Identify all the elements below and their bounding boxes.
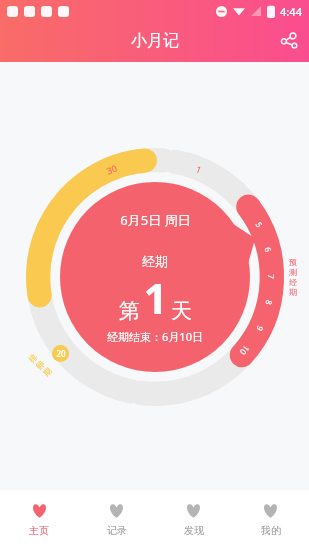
button[interactable]: 主页 (0, 490, 78, 549)
staticText: 卵 (34, 359, 46, 371)
staticText: 9 (254, 324, 267, 333)
staticText: 小月记 (131, 31, 179, 51)
staticText: 排 (26, 352, 39, 364)
staticText: 期 (41, 365, 54, 378)
staticText: 发现 (184, 524, 204, 537)
staticText: 天 (171, 298, 192, 324)
staticText: 8 (264, 299, 275, 306)
button[interactable]: 记录 (78, 490, 155, 549)
staticText: 记录 (107, 524, 127, 537)
staticText: 1 (194, 162, 204, 176)
staticText: 经期结束：6月10日 (107, 329, 203, 344)
button[interactable]: 我的 (232, 490, 309, 549)
staticText: 6 (263, 246, 274, 253)
staticText: 1 (143, 269, 168, 326)
staticText: 4:44 (280, 4, 302, 19)
staticText: 经 (289, 277, 297, 287)
staticText: 主页 (29, 524, 49, 537)
staticText: 6月5日 周日 (120, 211, 191, 229)
staticText: 30 (104, 161, 119, 177)
staticText: 测 (289, 267, 297, 277)
staticText: 期 (289, 287, 297, 297)
staticText: 第 (119, 298, 140, 324)
staticText: 预 (289, 257, 297, 267)
button[interactable]: Share (269, 21, 309, 61)
staticText: 5 (253, 220, 266, 229)
staticText: 7 (266, 274, 277, 279)
staticText: 经期 (142, 253, 168, 269)
staticText: 20 (56, 348, 66, 359)
button[interactable]: 发现 (155, 490, 232, 549)
staticText: 我的 (261, 524, 281, 537)
staticText: 10 (238, 343, 252, 358)
